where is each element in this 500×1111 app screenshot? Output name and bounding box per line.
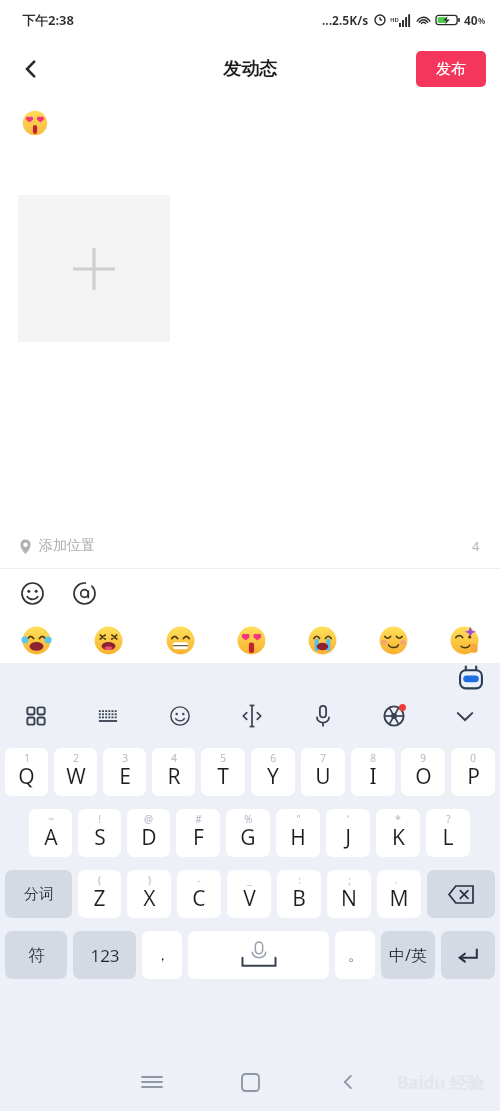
staticText: 0: [470, 751, 476, 765]
button[interactable]: 2: [54, 748, 97, 796]
staticText: C: [192, 884, 206, 913]
staticText: H: [290, 823, 306, 852]
staticText: S: [94, 823, 106, 852]
staticText: %: [478, 15, 486, 26]
staticText: T: [217, 762, 229, 791]
button[interactable]: %: [226, 809, 270, 857]
button[interactable]: 123: [73, 931, 136, 979]
staticText: 下午2:38: [22, 11, 74, 29]
button[interactable]: Back: [8, 46, 54, 92]
button[interactable]: Emoji: [17, 578, 47, 608]
button[interactable]: ，: [142, 931, 182, 979]
button[interactable]: Backspace: [427, 870, 495, 918]
button[interactable]: 发布: [416, 51, 486, 87]
button[interactable]: 8: [351, 748, 395, 796]
staticText: 4: [171, 751, 177, 765]
staticText: 发布: [436, 60, 466, 79]
button[interactable]: [287, 626, 358, 655]
button[interactable]: [0, 626, 72, 655]
staticText: G: [240, 823, 256, 852]
staticText: D: [141, 823, 157, 852]
button[interactable]: Hide keyboard: [429, 693, 500, 739]
staticText: ?: [446, 812, 451, 826]
button[interactable]: Home: [226, 1058, 274, 1106]
button[interactable]: Recents: [128, 1053, 176, 1111]
button[interactable]: 、: [377, 870, 421, 918]
staticText: -: [197, 873, 201, 887]
button[interactable]: [429, 626, 500, 655]
staticText: 添加位置: [39, 537, 95, 555]
button[interactable]: 添加位置: [18, 537, 95, 555]
staticText: 分词: [24, 885, 54, 904]
staticText: 3: [122, 751, 128, 765]
button[interactable]: Enter: [441, 931, 495, 979]
button[interactable]: 6: [251, 748, 295, 796]
staticText: O: [415, 762, 432, 791]
button[interactable]: Mention: [69, 578, 99, 608]
staticText: ": [296, 812, 301, 826]
staticText: 8: [370, 751, 376, 765]
staticText: U: [315, 762, 331, 791]
button[interactable]: Assistant: [458, 665, 484, 691]
button[interactable]: 9: [401, 748, 445, 796]
staticText: W: [66, 762, 86, 791]
button[interactable]: [144, 626, 216, 655]
staticText: ‘: [347, 812, 349, 826]
button[interactable]: [72, 626, 144, 655]
staticText: !: [98, 812, 101, 826]
staticText: 发动态: [223, 58, 277, 81]
button[interactable]: -: [177, 870, 221, 918]
button[interactable]: 4: [152, 748, 195, 796]
button[interactable]: [216, 626, 287, 655]
staticText: J: [345, 823, 351, 852]
button[interactable]: Apps: [0, 693, 72, 739]
staticText: 中/英: [389, 944, 427, 966]
button[interactable]: 。: [335, 931, 375, 979]
button[interactable]: ~: [29, 809, 72, 857]
button[interactable]: (: [78, 870, 121, 918]
button[interactable]: !: [78, 809, 121, 857]
staticText: HD: [390, 16, 399, 24]
button[interactable]: ?: [426, 809, 470, 857]
button[interactable]: Emoji: [144, 693, 216, 739]
button[interactable]: ): [127, 870, 171, 918]
button[interactable]: Add image: [18, 195, 170, 342]
button[interactable]: Cursor: [216, 693, 287, 739]
button[interactable]: Space: [188, 931, 329, 979]
button[interactable]: 分词: [5, 870, 72, 918]
staticText: I: [369, 762, 377, 791]
button[interactable]: ‘: [326, 809, 370, 857]
button[interactable]: #: [176, 809, 220, 857]
button[interactable]: 3: [103, 748, 146, 796]
staticText: 符: [28, 945, 45, 966]
button[interactable]: 1: [5, 748, 48, 796]
button[interactable]: 5: [201, 748, 245, 796]
button[interactable]: 中/英: [381, 931, 435, 979]
staticText: 6: [270, 751, 276, 765]
button[interactable]: 0: [451, 748, 495, 796]
button[interactable]: *: [376, 809, 420, 857]
button[interactable]: Back: [324, 1053, 372, 1111]
staticText: 。: [348, 946, 363, 965]
staticText: ...2.5K/s: [322, 12, 369, 28]
staticText: 40: [464, 12, 478, 28]
button[interactable]: Keyboard layout: [72, 693, 144, 739]
staticText: P: [467, 762, 480, 791]
button[interactable]: 7: [301, 748, 345, 796]
staticText: N: [341, 884, 357, 913]
button[interactable]: [358, 626, 429, 655]
button[interactable]: ;: [327, 870, 371, 918]
button[interactable]: :: [277, 870, 321, 918]
button[interactable]: _: [227, 870, 271, 918]
button[interactable]: ": [276, 809, 320, 857]
staticText: A: [44, 823, 58, 852]
button[interactable]: Voice input: [287, 693, 358, 739]
button[interactable]: Skin / theme: [358, 693, 429, 739]
staticText: 4: [472, 537, 480, 555]
staticText: V: [243, 884, 256, 913]
staticText: Baidu 经验: [397, 1071, 484, 1094]
staticText: M: [389, 884, 409, 913]
button[interactable]: 符: [5, 931, 67, 979]
staticText: 7: [320, 751, 326, 765]
button[interactable]: @: [127, 809, 170, 857]
